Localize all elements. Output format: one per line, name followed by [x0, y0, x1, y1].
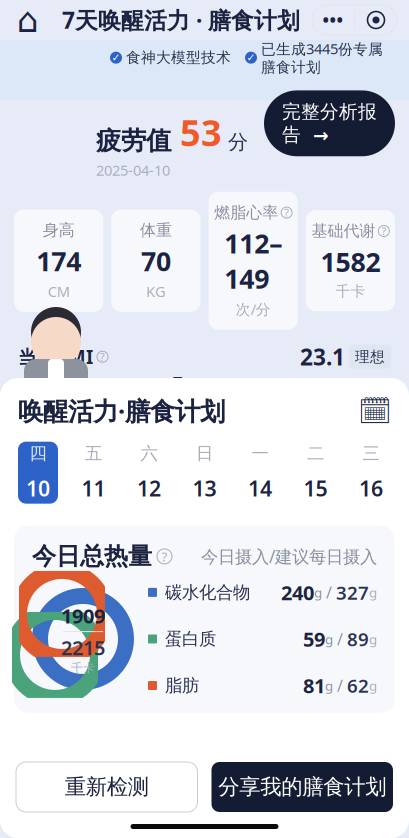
staticText: 六 [140, 443, 157, 464]
staticText: 日 [196, 443, 213, 464]
staticText: 81 [303, 672, 325, 699]
staticText: 唤醒活力·膳食计划 [18, 394, 225, 428]
staticText: 112–149 [224, 225, 282, 296]
staticText: 今日摄入/建议每日摄入 [201, 545, 377, 568]
staticText: ? [284, 205, 289, 220]
staticText: / [322, 582, 336, 603]
staticText: 三 [362, 443, 379, 464]
staticText: 当前BMI [18, 344, 93, 369]
staticText: 14 [248, 474, 272, 502]
staticText: 食神大模型技术 [126, 49, 231, 67]
staticText: 身高 [43, 220, 75, 240]
staticText: 分 [222, 130, 248, 154]
button[interactable]: Close [355, 5, 397, 35]
staticText: ? [100, 350, 105, 364]
staticText: 疲劳值 [96, 125, 171, 156]
staticText: 千卡 [71, 661, 95, 675]
button[interactable]: 三 [351, 442, 391, 504]
staticText: 2215 [61, 634, 105, 661]
staticText: 一 [251, 443, 268, 464]
staticText: 11 [81, 474, 105, 502]
staticText: 重新检测 [65, 774, 149, 800]
staticText: ? [161, 547, 167, 565]
staticText: 1582 [320, 244, 380, 279]
staticText: 174 [36, 243, 81, 278]
staticText: 碳水化合物 [165, 582, 250, 603]
staticText: 脂肪 [165, 675, 199, 696]
button[interactable]: 重新检测 [16, 762, 197, 812]
staticText: 23.1 [300, 342, 345, 372]
button[interactable]: 四 [18, 442, 58, 504]
staticText: / [333, 675, 347, 696]
button[interactable]: 二 [295, 442, 335, 504]
staticText: g [369, 630, 377, 648]
staticText: 千卡 [335, 282, 365, 300]
staticText: 2025-04-10 [96, 160, 170, 180]
button[interactable]: 五 [73, 442, 113, 504]
staticText: 62 [347, 673, 369, 698]
staticText: 二 [307, 443, 324, 464]
staticText: CM [48, 281, 70, 301]
staticText: ✓ [111, 52, 120, 64]
button[interactable]: 六 [129, 442, 169, 504]
staticText: 基础代谢 [311, 221, 375, 241]
staticText: 🗓 [358, 396, 392, 426]
staticText: 53 [171, 108, 222, 156]
staticText: 完整分析报告 → [282, 100, 377, 146]
staticText: / [333, 628, 347, 649]
staticText: 已生成3445份专属膳食计划 [261, 39, 383, 76]
button[interactable]: 一 [240, 442, 280, 504]
button[interactable]: More options [312, 5, 354, 35]
staticText: ? [381, 224, 386, 238]
staticText: 16 [359, 474, 383, 502]
staticText: 理想 [141, 403, 173, 423]
staticText: ⌂ [17, 0, 39, 40]
button[interactable]: 完整分析报告 → [264, 90, 395, 156]
staticText: KG [146, 281, 166, 301]
staticText: 13 [192, 474, 216, 502]
staticText: 89 [347, 627, 369, 651]
staticText: 四 [29, 443, 46, 464]
staticText: g [325, 677, 333, 694]
staticText: 次/分 [236, 299, 271, 319]
staticText: g [369, 677, 377, 694]
staticText: 五 [85, 443, 102, 464]
button[interactable]: Home [6, 0, 50, 40]
staticText: 10 [26, 474, 50, 502]
staticText: 240 [281, 579, 314, 606]
staticText: 12 [137, 474, 161, 502]
staticText: 1909 [61, 602, 105, 629]
staticText: 肥胖 [331, 403, 363, 423]
staticText: 蛋白质 [165, 628, 216, 650]
staticText: 偏瘦 [46, 403, 78, 423]
staticText: 燃脂心率 [214, 203, 278, 222]
staticText: g [314, 583, 322, 601]
staticText: 70 [141, 243, 171, 278]
button[interactable]: Calendar [359, 395, 391, 427]
staticText: 理想 [355, 348, 385, 366]
button[interactable]: 分享我的膳食计划 [211, 762, 393, 812]
staticText: ▼ [173, 374, 182, 387]
staticText: 327 [336, 580, 369, 605]
staticText: ••• [322, 8, 343, 31]
staticText: g [369, 583, 377, 601]
staticText: 15 [303, 474, 327, 502]
button[interactable]: 日 [184, 442, 224, 504]
staticText: 59 [303, 626, 325, 652]
staticText: 体重 [140, 220, 172, 240]
staticText: 今日总热量 [32, 542, 152, 571]
staticText: ✓ [246, 52, 255, 64]
staticText: g [325, 630, 333, 648]
staticText: 分享我的膳食计划 [218, 774, 386, 800]
staticText: 7天唤醒活力 · 膳食计划 [62, 5, 300, 35]
